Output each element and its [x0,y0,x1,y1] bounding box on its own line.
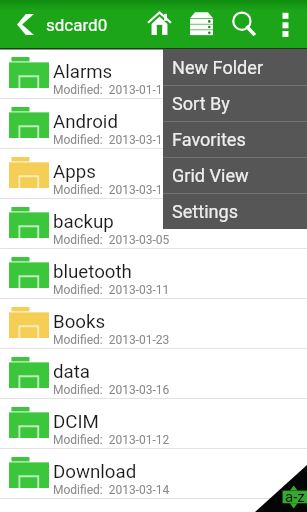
button[interactable]: backup [0,199,307,249]
staticText: Favorites [172,129,246,150]
staticText: bluetooth [53,261,132,283]
button[interactable]: Favorites [163,122,307,157]
staticText: Modified: 2013-03-14 [53,483,170,497]
staticText: Alarms [53,61,113,83]
button[interactable]: Search [223,0,264,48]
staticText: Download [53,461,137,483]
button[interactable]: Grid View [163,158,307,193]
staticText: Modified: 2013-01-23 [53,333,170,347]
staticText: Modified: 2013-03-11 [53,283,170,297]
button[interactable]: Download [0,449,307,499]
button[interactable]: New Folder [163,49,307,85]
button[interactable]: Back [0,0,44,48]
staticText: Modified: 2013-03-05 [53,233,170,247]
staticText: Settings [172,201,239,222]
staticText: backup [53,211,114,233]
staticText: data [53,361,90,383]
button[interactable]: Storage [181,0,222,48]
staticText: Modified: 2013-01-12 [53,83,170,97]
button[interactable]: DCIM [0,399,307,449]
staticText: a-z [285,488,305,506]
staticText: Modified: 2013-03-16 [53,383,170,397]
button[interactable]: Apps [0,149,307,199]
staticText: Modified: 2013-01-12 [53,433,170,447]
button[interactable]: data [0,349,307,399]
button[interactable]: Settings [163,194,307,229]
button[interactable]: Android [0,99,307,149]
button[interactable]: Alarms [0,49,307,99]
staticText: Modified: 2013-03-11 [53,133,170,147]
button[interactable]: Sort a-z [255,465,307,512]
staticText: Modified: 2013-03-12 [53,183,170,197]
staticText: Grid View [172,165,249,186]
staticText: DCIM [53,411,99,433]
button[interactable]: bluetooth [0,249,307,299]
staticText: Android [53,111,118,133]
staticText: Apps [53,161,96,183]
button[interactable]: Books [0,299,307,349]
staticText: sdcard0 [46,15,108,35]
button[interactable]: Sort By [163,86,307,121]
button[interactable]: More options [273,0,307,48]
button[interactable]: Home [139,0,180,48]
staticText: New Folder [172,57,264,78]
staticText: Books [53,311,106,333]
staticText: Sort By [172,93,230,114]
